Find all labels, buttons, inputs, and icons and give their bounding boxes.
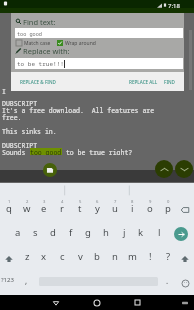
button[interactable]: m (123, 246, 141, 271)
staticText: ?123 (1, 276, 14, 284)
staticText: d (50, 226, 56, 239)
staticText: DUBSCRIPT (2, 99, 38, 106)
button[interactable]: Find next (175, 160, 193, 178)
staticText: 3 (43, 199, 46, 205)
staticText: 7:18 (168, 2, 180, 8)
button[interactable]: . (158, 271, 176, 296)
staticText: 2 (26, 199, 29, 205)
staticText: y (95, 202, 100, 215)
button[interactable]: z (18, 246, 36, 271)
button[interactable]: REPLACE & FIND (14, 72, 62, 91)
staticText: 5 (79, 199, 82, 205)
staticText: z (25, 250, 30, 263)
staticText: a (15, 226, 21, 239)
button[interactable]: Emoji (176, 271, 194, 296)
button[interactable]: Paste (43, 163, 57, 177)
button[interactable]: 5 (71, 197, 89, 222)
staticText: to be true right? (62, 148, 133, 155)
staticText: 4 (61, 199, 64, 205)
button[interactable]: x (35, 246, 53, 271)
button[interactable]: Enter (174, 227, 188, 241)
button[interactable]: Hide keyboard (176, 295, 193, 310)
button[interactable]: 7 (106, 197, 124, 222)
button[interactable]: f (62, 221, 80, 246)
button[interactable]: Home (88, 295, 105, 310)
button[interactable]: ? (159, 246, 177, 271)
staticText: f (69, 226, 73, 239)
staticText: DUBSCRIPT (2, 141, 38, 148)
button[interactable]: Back (47, 295, 64, 310)
staticText: r (60, 202, 64, 215)
button[interactable]: 6 (88, 197, 106, 222)
button[interactable]: , (14, 271, 39, 296)
staticText: Wrap around (65, 40, 96, 46)
staticText: REPLACE & FIND (20, 79, 56, 85)
button[interactable]: s (26, 221, 44, 246)
staticText: I (2, 87, 6, 94)
button[interactable]: j (115, 221, 133, 246)
staticText: m (128, 250, 137, 263)
staticText: b (94, 250, 100, 263)
button[interactable]: 2 (18, 197, 36, 222)
staticText: free. (2, 113, 22, 120)
button[interactable]: h (97, 221, 115, 246)
button[interactable]: d (44, 221, 62, 246)
staticText: This sinks in. (2, 127, 57, 134)
staticText: too good (30, 148, 62, 155)
button[interactable]: n (106, 246, 124, 271)
staticText: Find text: (23, 17, 56, 26)
button[interactable]: a (9, 221, 27, 246)
button[interactable]: ?123 (0, 271, 14, 296)
button[interactable]: too good (15, 28, 183, 38)
button[interactable]: 1 (0, 197, 18, 222)
button[interactable]: 3 (35, 197, 53, 222)
staticText: s (33, 226, 38, 239)
staticText: x (41, 250, 47, 263)
staticText: . (166, 275, 169, 286)
staticText: too good (17, 30, 42, 37)
staticText: , (25, 275, 28, 286)
staticText: p (165, 202, 171, 215)
staticText: Sounds (2, 148, 30, 155)
button[interactable]: ! (141, 246, 159, 271)
button[interactable]: b (88, 246, 106, 271)
button[interactable] (16, 40, 22, 46)
button[interactable]: to be true!!! (15, 58, 183, 69)
staticText: j (123, 226, 126, 239)
button[interactable]: v (71, 246, 89, 271)
staticText: Replace with: (23, 46, 70, 55)
staticText: 0 (167, 199, 170, 205)
button[interactable]: REPLACE ALL (126, 72, 161, 91)
staticText: q (6, 202, 12, 215)
button[interactable]: Recent apps (129, 295, 146, 310)
button[interactable]: Shift (0, 246, 18, 271)
staticText: t (78, 202, 82, 215)
button[interactable]: 9 (141, 197, 159, 222)
button[interactable]: g (79, 221, 97, 246)
staticText: l (158, 226, 161, 239)
button[interactable]: Find previous (155, 160, 173, 178)
button[interactable]: 0 (159, 197, 177, 222)
button[interactable]: Backspace (176, 197, 194, 222)
button[interactable] (57, 40, 63, 46)
staticText: 9 (149, 199, 152, 205)
button[interactable]: Shift (176, 246, 194, 271)
staticText: u (112, 202, 118, 215)
staticText: h (103, 226, 109, 239)
staticText: k (138, 226, 144, 239)
staticText: o (147, 202, 153, 215)
button[interactable]: FIND (159, 72, 180, 91)
button[interactable]: 8 (123, 197, 141, 222)
button[interactable]: 4 (53, 197, 71, 222)
staticText: FIND (164, 79, 175, 85)
button[interactable]: c (53, 246, 71, 271)
button[interactable]: k (132, 221, 150, 246)
staticText: c (60, 250, 65, 263)
staticText: to be true!!! (17, 60, 64, 68)
staticText: i (131, 202, 134, 215)
staticText: 6 (96, 199, 99, 205)
button[interactable]: l (150, 221, 168, 246)
